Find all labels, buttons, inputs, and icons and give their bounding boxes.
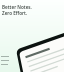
staticText: Zero Effort. [2,10,28,16]
staticText: Better Notes. [2,4,32,10]
